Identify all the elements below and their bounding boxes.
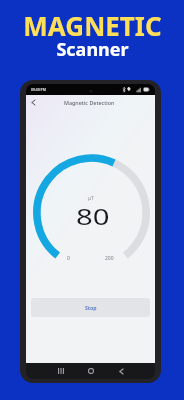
staticText: MAGNETIC [23, 8, 162, 43]
staticText: 0 [67, 255, 70, 262]
button[interactable]: Stop [31, 298, 150, 317]
staticText: 80 [76, 202, 110, 231]
staticText: Scanner [56, 37, 129, 62]
button[interactable]: Home [85, 365, 97, 377]
button[interactable]: Back [27, 96, 40, 109]
staticText: 09:30 PM [31, 87, 46, 92]
button[interactable]: Back [115, 365, 127, 377]
button[interactable]: Recent apps [55, 365, 67, 377]
staticText: 200 [105, 255, 114, 262]
staticText: Magnetic Detection [64, 99, 115, 106]
staticText: Stop [85, 304, 97, 311]
staticText: µT [88, 194, 95, 201]
